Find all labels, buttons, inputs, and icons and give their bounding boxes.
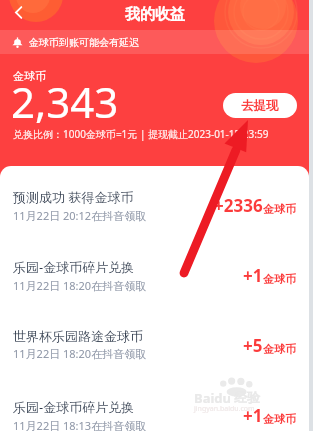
- staticText: 去提现: [241, 98, 279, 114]
- staticText: 我的收益: [125, 5, 185, 24]
- staticText: 金球币: [263, 202, 296, 216]
- staticText: 11月22日 20:12在抖音领取: [13, 208, 147, 223]
- button[interactable]: 乐园-金球币碎片兑换: [0, 376, 309, 431]
- staticText: 经验: [234, 389, 260, 405]
- staticText: +5: [243, 334, 263, 357]
- staticText: 预测成功 获得金球币: [13, 188, 134, 206]
- staticText: +2336: [214, 194, 263, 217]
- button[interactable]: 预测成功 获得金球币: [0, 166, 309, 236]
- button[interactable]: 金球币到账可能会有延迟: [0, 30, 309, 54]
- staticText: 金球币: [13, 69, 46, 83]
- button[interactable]: Back: [2, 0, 34, 25]
- button[interactable]: 去提现: [223, 93, 297, 118]
- staticText: 金球币: [263, 342, 296, 356]
- staticText: 11月22日 18:13在抖音领取: [13, 418, 147, 431]
- staticText: Baidu: [194, 389, 231, 407]
- staticText: 11月22日 18:20在抖音领取: [13, 346, 147, 361]
- staticText: +1: [243, 404, 263, 427]
- staticText: 世界杯乐园路途金球币: [13, 328, 143, 344]
- button[interactable]: 乐园-金球币碎片兑换: [0, 236, 309, 306]
- staticText: 乐园-金球币碎片兑换: [13, 398, 135, 416]
- staticText: 乐园-金球币碎片兑换: [13, 258, 135, 276]
- button[interactable]: 世界杯乐园路途金球币: [0, 306, 309, 376]
- staticText: 11月22日 18:20在抖音领取: [13, 278, 147, 293]
- staticText: 金球币: [263, 272, 296, 286]
- staticText: 金球币到账可能会有延迟: [29, 36, 139, 49]
- staticText: +1: [243, 264, 263, 287]
- staticText: jingyan.baidu.com: [194, 404, 255, 414]
- staticText: 2,343: [11, 73, 119, 130]
- staticText: 金球币: [263, 412, 296, 426]
- staticText: 兑换比例：1000金球币=1元 | 提现截止2023-01-15 23:59: [13, 127, 269, 141]
